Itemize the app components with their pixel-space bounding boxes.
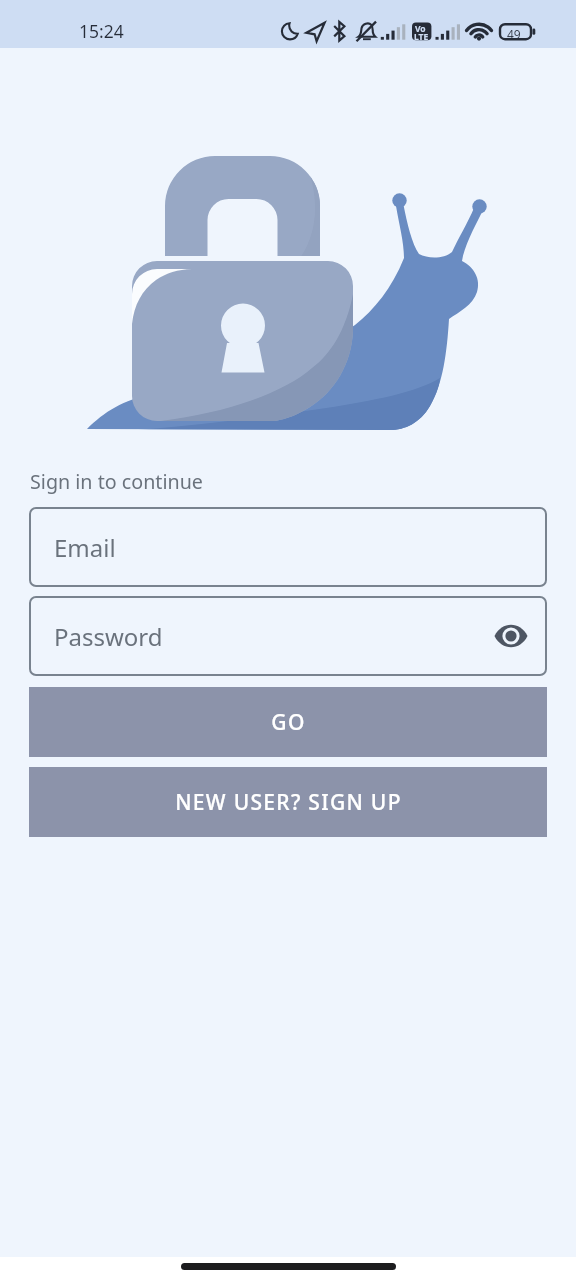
staticText: 15:24	[79, 19, 124, 43]
button[interactable]: Password	[29, 596, 547, 676]
staticText: Password	[54, 620, 163, 653]
staticText: GO	[271, 708, 306, 737]
button[interactable]: NEW USER? SIGN UP	[29, 767, 547, 837]
button[interactable]: Show password	[490, 615, 532, 657]
button[interactable]: GO	[29, 687, 547, 757]
staticText: Sign in to continue	[30, 468, 203, 495]
staticText: LTE	[414, 31, 429, 43]
staticText: Email	[54, 531, 116, 564]
button[interactable]: Email	[29, 507, 547, 587]
staticText: Vo	[415, 23, 426, 35]
staticText: 49	[507, 26, 521, 42]
staticText: NEW USER? SIGN UP	[175, 788, 402, 817]
